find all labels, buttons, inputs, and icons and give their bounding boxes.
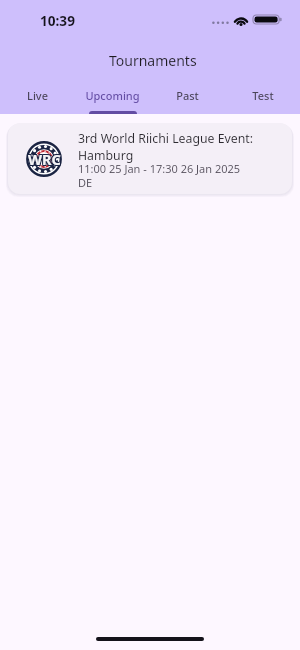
staticText: WRC <box>28 150 61 170</box>
button[interactable]: Upcoming <box>75 86 150 114</box>
button[interactable]: World Riichi Championship logo <box>8 123 292 194</box>
staticText: WRC <box>29 149 62 169</box>
staticText: WRC <box>27 150 60 170</box>
staticText: Upcoming <box>85 88 140 103</box>
button[interactable]: Live <box>0 86 75 114</box>
staticText: Past <box>176 88 199 103</box>
staticText: 11:00 25 Jan - 17:30 26 Jan 2025 DE <box>78 161 241 190</box>
staticText: WRC <box>28 149 61 169</box>
staticText: 3rd World Riichi League Event: Hamburg <box>78 130 284 164</box>
staticText: Live <box>27 88 48 103</box>
staticText: WRC <box>28 148 61 168</box>
staticText: WRC <box>29 150 62 170</box>
other: World Riichi Championship logo <box>26 141 62 177</box>
other: Home indicator <box>96 637 204 641</box>
staticText: 10:39 <box>40 11 75 30</box>
button[interactable]: Past <box>150 86 225 114</box>
staticText: Tournaments <box>109 51 197 70</box>
staticText: WRC <box>27 149 60 169</box>
button[interactable]: Test <box>225 86 300 114</box>
staticText: WRC <box>29 148 62 168</box>
staticText: WRC <box>27 148 60 168</box>
staticText: Test <box>252 88 274 103</box>
